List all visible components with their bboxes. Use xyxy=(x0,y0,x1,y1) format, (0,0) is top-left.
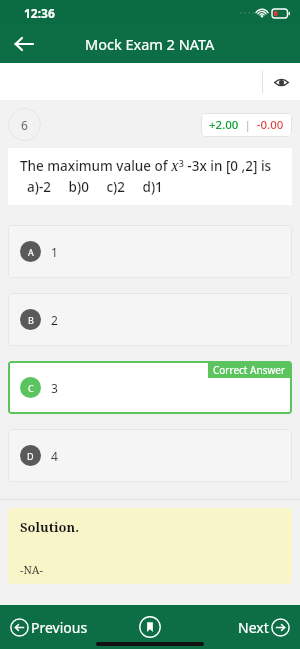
staticText: 6 xyxy=(21,117,28,133)
staticText: The maximum value of x3 -3x in [0 ,2] is xyxy=(20,157,272,175)
button[interactable]: Show answer xyxy=(265,66,297,98)
staticText: 1 xyxy=(51,244,58,260)
staticText: -NA- xyxy=(20,562,43,577)
staticText: Previous xyxy=(31,618,88,637)
staticText: Next xyxy=(238,618,269,637)
button[interactable]: C xyxy=(8,361,292,414)
staticText: a)-2 b)0 c)2 d)1 xyxy=(20,178,163,196)
button[interactable]: Next xyxy=(238,618,290,637)
staticText: B xyxy=(28,314,34,326)
button[interactable]: Previous xyxy=(10,618,88,637)
staticText: A xyxy=(28,246,34,258)
staticText: D xyxy=(27,450,34,462)
staticText: Correct Answer xyxy=(213,363,286,377)
button[interactable]: Back xyxy=(6,26,42,62)
button[interactable]: Bookmark xyxy=(134,611,166,643)
staticText: 3 xyxy=(51,380,58,396)
staticText: C xyxy=(28,382,34,394)
staticText: 2 xyxy=(51,312,58,328)
button[interactable]: B xyxy=(8,293,292,346)
button[interactable]: A xyxy=(8,225,292,278)
staticText: Solution. xyxy=(20,518,80,536)
staticText: 12:36 xyxy=(24,5,55,21)
staticText: Mock Exam 2 NATA xyxy=(85,34,215,54)
button[interactable]: D xyxy=(8,429,292,482)
staticText: 4 xyxy=(51,448,58,464)
staticText: +2.00 | -0.00 xyxy=(209,117,284,133)
